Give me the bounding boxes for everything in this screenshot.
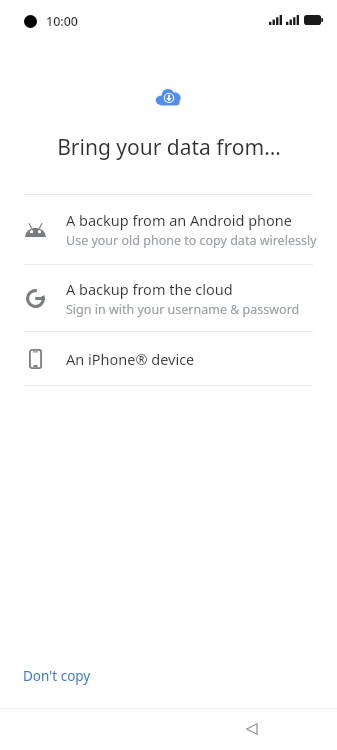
staticText: A backup from an Android phone xyxy=(66,210,292,230)
staticText: Bring your data from… xyxy=(57,133,281,162)
staticText: An iPhone® device xyxy=(66,349,195,369)
button[interactable]: Back xyxy=(236,713,268,745)
button[interactable]: Android phone xyxy=(0,195,337,264)
button[interactable]: iPhone device xyxy=(0,332,337,385)
staticText: Use your old phone to copy data wireless… xyxy=(66,232,317,249)
other: Google account xyxy=(26,289,45,308)
staticText: Sign in with your username & password xyxy=(66,301,300,318)
button[interactable]: Google account xyxy=(0,265,337,331)
other: iPhone device xyxy=(29,349,42,369)
button[interactable]: Don't copy xyxy=(14,660,100,692)
other: Android phone xyxy=(25,223,46,237)
staticText: A backup from the cloud xyxy=(66,279,233,299)
staticText: Don't copy xyxy=(23,667,91,685)
staticText: 10:00 xyxy=(46,13,79,30)
